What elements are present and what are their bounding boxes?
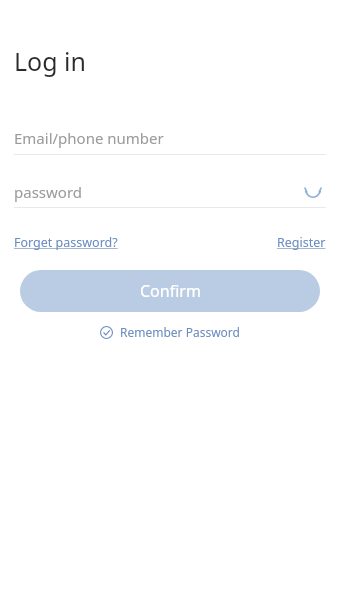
staticText: password [14, 182, 82, 202]
button[interactable]: Email/phone number [14, 122, 326, 154]
button[interactable]: password [14, 182, 300, 202]
staticText: Email/phone number [14, 128, 164, 148]
button[interactable]: Show password [300, 179, 326, 205]
staticText: Forget password? [14, 234, 118, 251]
button[interactable]: Forget password? [14, 234, 118, 251]
staticText: Confirm [140, 280, 201, 302]
button[interactable]: Confirm [20, 270, 320, 312]
button[interactable]: Register [277, 234, 326, 251]
staticText: Remember Password [120, 324, 240, 340]
button[interactable]: Remember Password [96, 322, 244, 342]
staticText: Register [277, 234, 326, 251]
staticText: Log in [14, 44, 87, 78]
